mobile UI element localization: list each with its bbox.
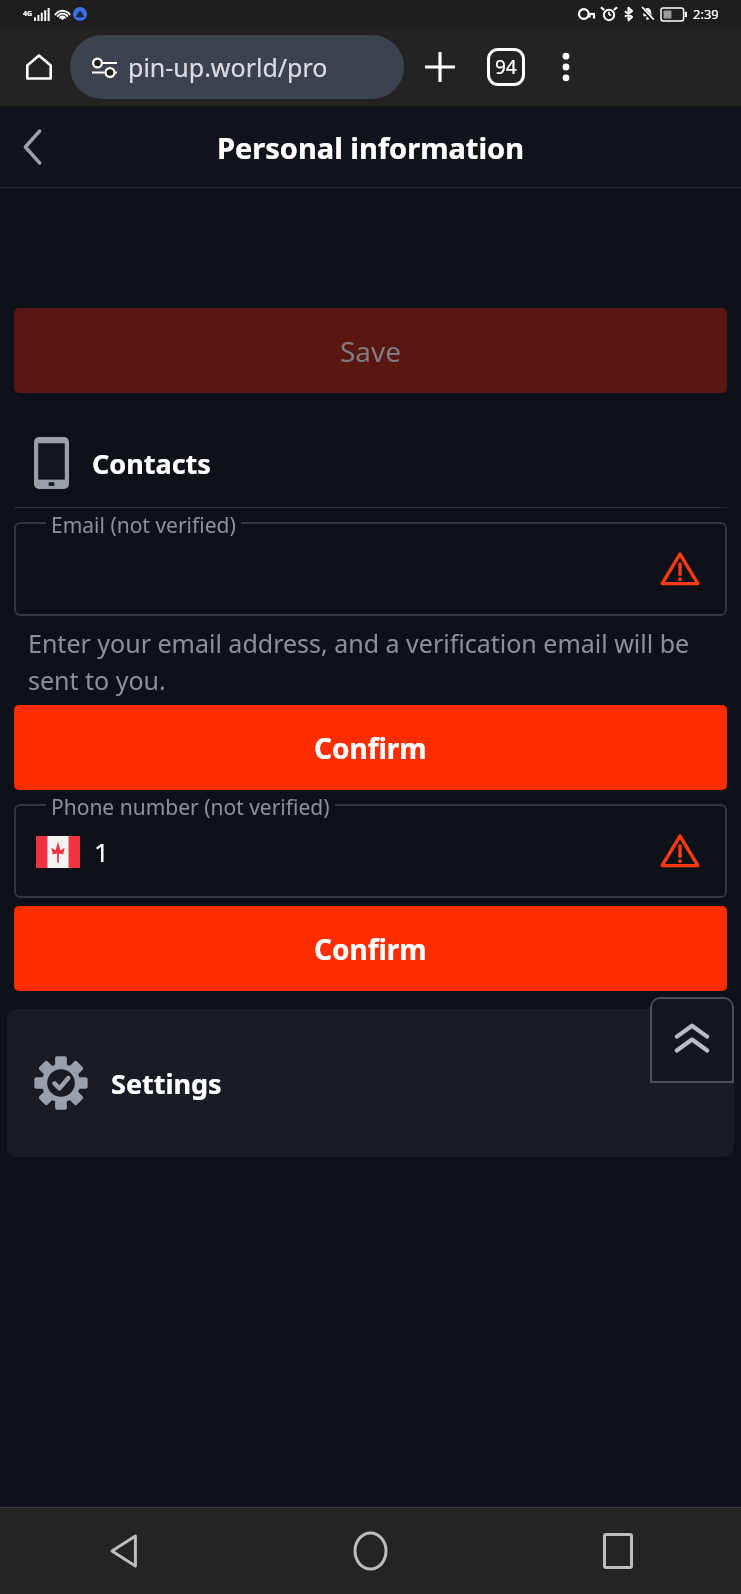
button[interactable]: Confirm	[14, 906, 727, 991]
other: Not verified	[659, 548, 701, 590]
button[interactable]: Back	[6, 121, 58, 173]
button[interactable]: Settings	[7, 1009, 734, 1157]
staticText: Settings	[111, 1065, 222, 1102]
staticText: 2:39	[693, 5, 719, 23]
staticText: 94	[495, 54, 517, 80]
button[interactable]: pin-up.world/pro	[70, 35, 404, 99]
staticText: Email (not verified)	[51, 511, 236, 540]
staticText: Personal information	[217, 128, 525, 167]
button[interactable]: Home	[16, 44, 62, 90]
button[interactable]: New tab	[416, 43, 464, 91]
staticText: pin-up.world/pro	[128, 50, 328, 84]
staticText: Enter your email address, and a verifica…	[28, 626, 713, 697]
button[interactable]: Save	[14, 308, 727, 393]
staticText: Save	[340, 332, 402, 370]
button[interactable]: More options	[544, 45, 588, 89]
staticText: Phone number (not verified)	[51, 793, 330, 822]
button[interactable]	[14, 522, 727, 616]
staticText: 1	[94, 834, 109, 869]
staticText: Contacts	[92, 445, 211, 482]
staticText: 4G	[23, 9, 33, 19]
button[interactable]: Back	[0, 1508, 247, 1594]
button[interactable]: Recent apps	[494, 1508, 741, 1594]
other: Not verified	[659, 830, 701, 872]
button[interactable]: Tabs, 94 open	[482, 43, 530, 91]
staticText: Confirm	[314, 729, 427, 767]
button[interactable]: Confirm	[14, 705, 727, 790]
button[interactable]	[14, 804, 727, 898]
button[interactable]: Scroll to top	[650, 997, 734, 1083]
button[interactable]: Home	[247, 1508, 494, 1594]
staticText: Confirm	[314, 930, 427, 968]
